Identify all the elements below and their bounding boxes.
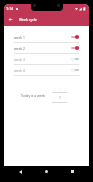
- staticText: Week cycle: [19, 17, 37, 22]
- staticText: 0: [59, 87, 61, 91]
- button[interactable]: Toggle: [71, 46, 79, 50]
- button[interactable]: Home: [41, 166, 52, 177]
- button[interactable]: Toggle: [71, 68, 79, 72]
- staticText: week 2: [14, 46, 25, 50]
- button[interactable]: week 4: [4, 65, 89, 76]
- button[interactable]: week 1: [4, 32, 89, 43]
- button[interactable]: Week number: [52, 86, 67, 108]
- staticText: week 4: [14, 68, 25, 72]
- staticText: Today is a week: [21, 93, 46, 97]
- button[interactable]: week 3: [4, 54, 89, 65]
- button[interactable]: Toggle: [71, 35, 79, 39]
- staticText: 1:14: [6, 6, 14, 11]
- button[interactable]: Recent apps: [67, 166, 78, 177]
- button[interactable]: Toggle: [71, 57, 79, 61]
- button[interactable]: week 2: [4, 43, 89, 54]
- staticText: week 3: [14, 57, 25, 61]
- button[interactable]: Navigate up: [4, 13, 17, 26]
- staticText: 1: [59, 95, 61, 99]
- staticText: week 1: [14, 35, 25, 39]
- button[interactable]: Back: [15, 166, 26, 177]
